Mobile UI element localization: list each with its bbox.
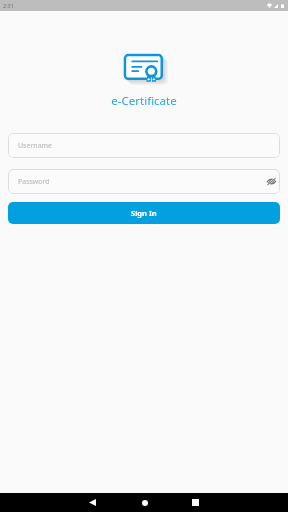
button[interactable]: Sign In (8, 202, 280, 224)
staticText: Password (18, 177, 50, 187)
button[interactable]: Password (8, 169, 280, 194)
staticText: Username (18, 141, 53, 151)
button[interactable]: Username (8, 133, 280, 158)
button[interactable]: Toggle password visibility (264, 174, 278, 188)
staticText: Sign In (131, 208, 157, 218)
button[interactable]: Back (70, 493, 115, 512)
button[interactable]: Recent apps (173, 493, 218, 512)
staticText: e-Certificate (111, 93, 177, 109)
staticText: 2:31 (3, 2, 14, 9)
button[interactable]: Home (122, 493, 167, 512)
